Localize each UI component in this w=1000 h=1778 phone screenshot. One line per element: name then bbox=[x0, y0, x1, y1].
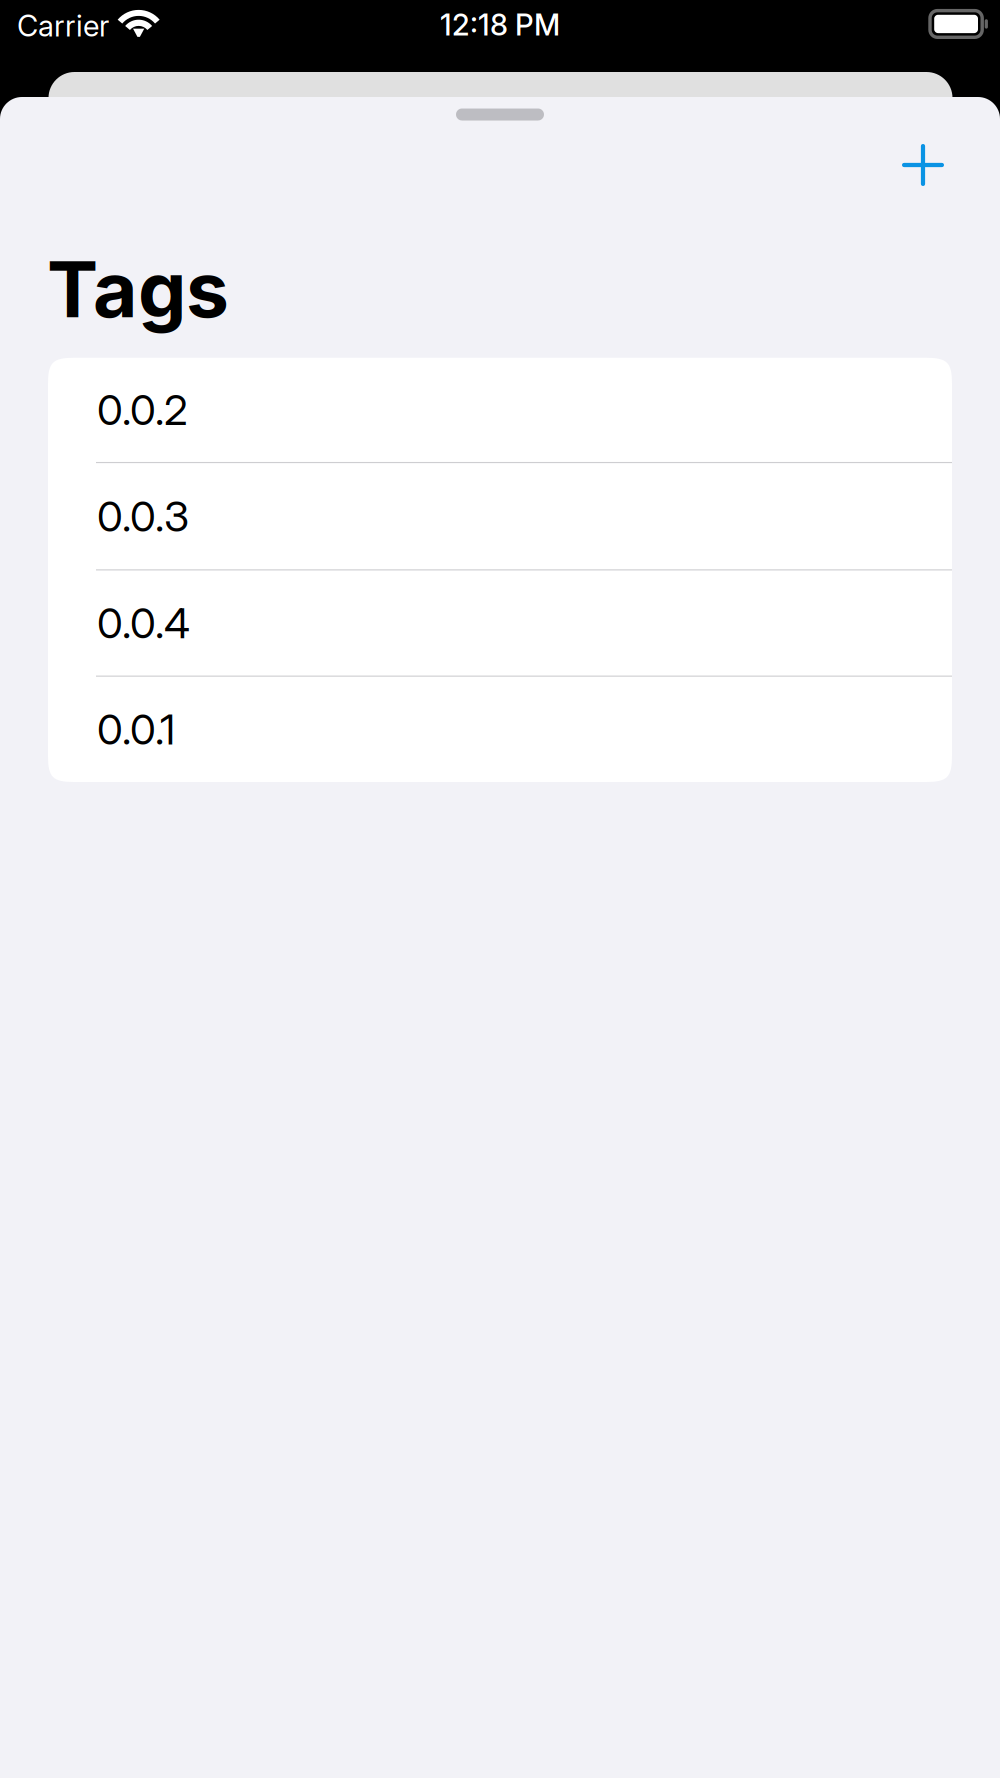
staticText: 0.0.1 bbox=[97, 704, 175, 755]
button[interactable]: Add tag bbox=[879, 121, 967, 209]
button[interactable]: 0.0.1 bbox=[48, 677, 952, 782]
button[interactable]: 0.0.4 bbox=[48, 570, 952, 677]
button[interactable]: 0.0.3 bbox=[48, 463, 952, 570]
button[interactable]: 0.0.2 bbox=[48, 358, 952, 463]
staticText: 0.0.2 bbox=[97, 384, 188, 435]
staticText: Tags bbox=[47, 243, 229, 336]
staticText: Carrier bbox=[17, 8, 109, 43]
staticText: 0.0.3 bbox=[97, 491, 189, 542]
staticText: 12:18 PM bbox=[440, 7, 560, 42]
staticText: 0.0.4 bbox=[97, 598, 190, 648]
